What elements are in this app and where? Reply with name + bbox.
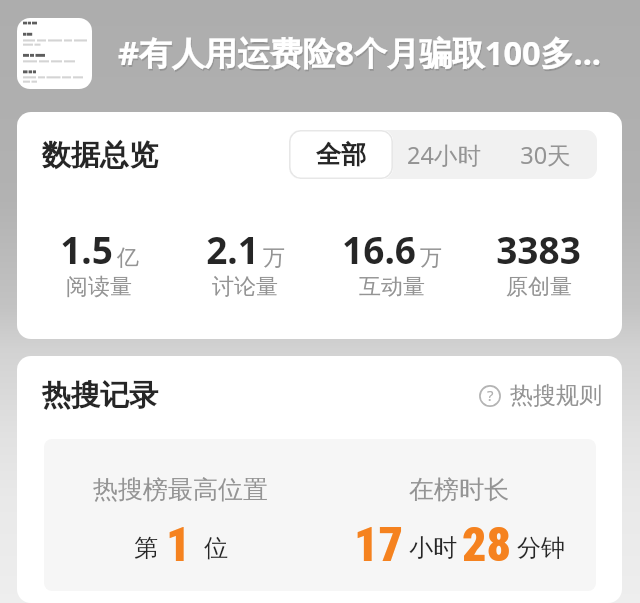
staticText: 原创量 <box>506 273 572 301</box>
staticText: 万 <box>420 244 442 272</box>
staticText: 全部 <box>316 139 366 170</box>
other: Hot search rules help <box>479 385 501 407</box>
staticText: 24小时 <box>407 139 481 171</box>
button[interactable]: Topic preview image <box>17 18 92 89</box>
staticText: #有人用运费险8个月骗取100多... <box>118 30 602 75</box>
staticText: 热搜榜最高位置 <box>93 474 268 505</box>
staticText: ? <box>487 385 494 405</box>
staticText: 28 <box>462 516 512 572</box>
staticText: 在榜时长 <box>409 474 509 505</box>
staticText: 1 <box>166 516 191 572</box>
staticText: #有人用运费险8个月骗取100多... <box>119 32 603 77</box>
staticText: 3383 <box>496 224 581 274</box>
staticText: 30天 <box>520 139 571 171</box>
button[interactable]: 16.6 <box>318 224 465 302</box>
staticText: 位 <box>204 533 228 563</box>
staticText: 阅读量 <box>66 273 132 301</box>
staticText: 热搜规则 <box>510 381 602 410</box>
staticText: 小时 <box>409 533 457 563</box>
staticText: 分钟 <box>517 533 565 563</box>
staticText: 第 <box>134 533 158 563</box>
staticText: 亿 <box>117 244 139 272</box>
staticText: 讨论量 <box>212 273 278 301</box>
staticText: 数据总览 <box>42 137 158 174</box>
button[interactable]: 2.1 <box>172 224 318 302</box>
staticText: 16.6 <box>342 224 416 274</box>
staticText: 2.1 <box>206 224 259 274</box>
staticText: 互动量 <box>359 273 425 301</box>
staticText: 17 <box>354 516 404 572</box>
button[interactable]: 全部 <box>289 130 393 179</box>
button[interactable]: 30天 <box>494 130 597 179</box>
button[interactable]: 3383 <box>465 224 612 302</box>
button[interactable]: 24小时 <box>393 130 494 179</box>
button[interactable]: Hot search rules help <box>479 381 602 410</box>
staticText: 热搜记录 <box>42 377 158 414</box>
button[interactable]: 1.5 <box>26 224 172 302</box>
staticText: 1.5 <box>60 224 113 274</box>
staticText: 万 <box>263 244 285 272</box>
